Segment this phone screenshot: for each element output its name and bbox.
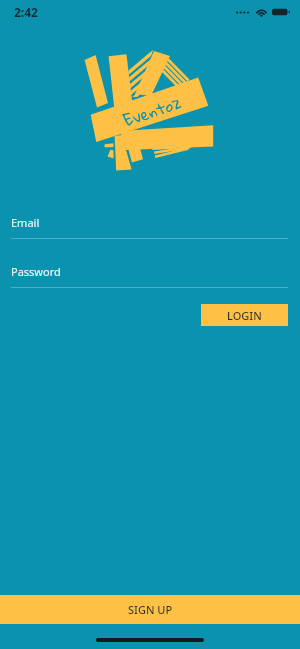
button[interactable]: SIGN UP — [0, 595, 300, 624]
button[interactable]: LOGIN — [201, 304, 288, 326]
staticText: Email — [11, 215, 40, 230]
staticText: Eventoz — [119, 87, 185, 135]
staticText: Password — [11, 264, 61, 279]
staticText: 2:42 — [14, 4, 38, 20]
staticText: LOGIN — [227, 308, 262, 323]
staticText: SIGN UP — [128, 602, 173, 617]
